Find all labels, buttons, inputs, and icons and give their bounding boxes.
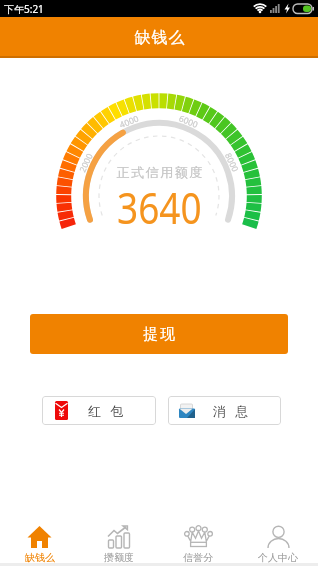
staticText: 提现 — [142, 325, 176, 344]
staticText: 缺钱么 — [134, 28, 185, 48]
button[interactable]: 个人中心 — [238, 520, 318, 566]
staticText: 正式信用额度 — [116, 164, 203, 180]
staticText: 缺钱么 — [25, 551, 55, 564]
button[interactable]: 缺钱么 — [0, 520, 79, 566]
button[interactable]: 红 包 — [42, 396, 156, 425]
staticText: 红 包 — [88, 402, 127, 420]
button[interactable]: 提现 — [30, 314, 288, 354]
button[interactable]: 攒额度 — [79, 520, 158, 566]
staticText: 信誉分 — [183, 551, 213, 564]
staticText: 3640 — [117, 177, 202, 237]
staticText: 个人中心 — [258, 551, 298, 564]
staticText: 下午5:21 — [4, 2, 44, 16]
button[interactable]: 消 息 — [168, 396, 281, 425]
button[interactable]: 信誉分 — [158, 520, 238, 566]
staticText: 消 息 — [213, 402, 252, 420]
staticText: 攒额度 — [104, 551, 134, 564]
